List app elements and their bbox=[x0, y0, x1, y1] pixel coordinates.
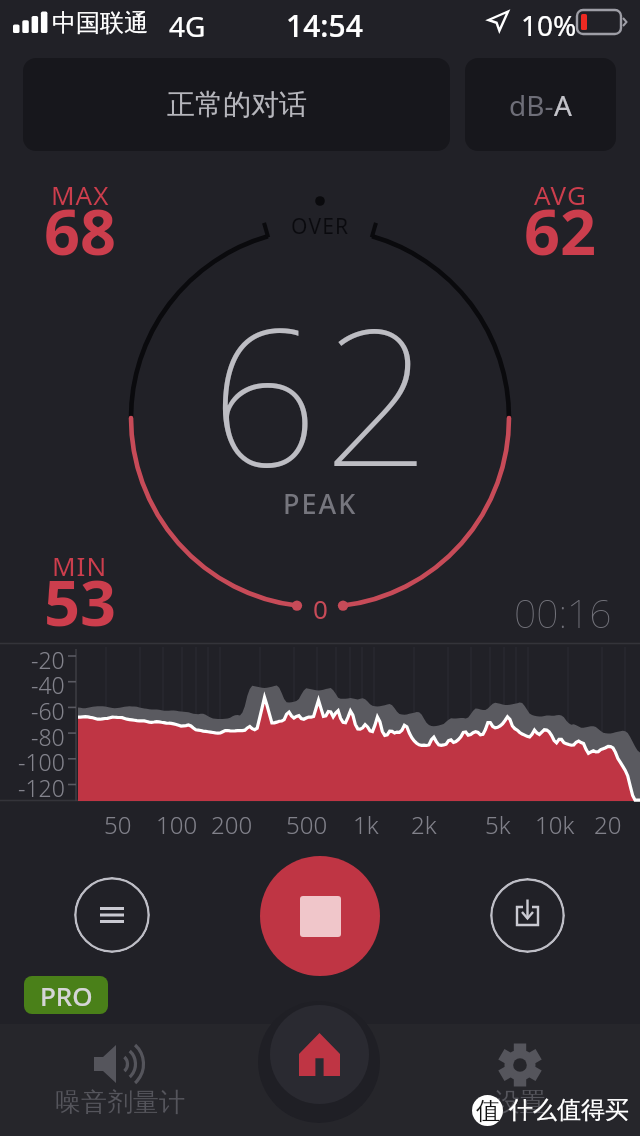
staticText: 1k bbox=[353, 808, 379, 841]
staticText: MIN bbox=[52, 548, 108, 583]
button[interactable]: Save bbox=[490, 878, 565, 953]
staticText: 14:54 bbox=[286, 5, 363, 46]
staticText: 10% bbox=[521, 6, 577, 44]
staticText: 00:16 bbox=[514, 586, 612, 639]
staticText: 200 bbox=[211, 808, 253, 841]
staticText: 62 bbox=[210, 263, 437, 522]
staticText: 68 bbox=[44, 188, 117, 274]
button[interactable]: Menu bbox=[74, 877, 150, 953]
staticText: 设置 bbox=[494, 1086, 546, 1119]
staticText: PEAK bbox=[283, 485, 358, 522]
button[interactable]: Home bbox=[258, 1001, 380, 1123]
staticText: 53 bbox=[44, 559, 117, 645]
staticText: 中国联通 bbox=[52, 8, 148, 38]
staticText: OVER bbox=[291, 212, 350, 241]
staticText: -20 bbox=[31, 644, 65, 670]
staticText: 10k bbox=[535, 808, 575, 841]
button[interactable]: dB- bbox=[465, 58, 616, 151]
staticText: 50 bbox=[104, 808, 132, 841]
staticText: 噪音剂量计 bbox=[55, 1086, 185, 1119]
staticText: PRO bbox=[40, 978, 93, 1013]
staticText: 正常的对话 bbox=[167, 87, 307, 122]
staticText: 500 bbox=[286, 808, 328, 841]
staticText: -40 bbox=[31, 669, 65, 695]
staticText: dB- bbox=[509, 86, 554, 124]
button[interactable]: Stop recording bbox=[260, 856, 380, 976]
staticText: 什么值得买 bbox=[509, 1095, 629, 1125]
staticText: -100 bbox=[18, 746, 65, 772]
staticText: 100 bbox=[156, 808, 198, 841]
button[interactable]: 设置 bbox=[400, 1024, 640, 1136]
staticText: 62 bbox=[524, 188, 597, 274]
staticText: A bbox=[554, 86, 572, 124]
staticText: MAX bbox=[51, 177, 110, 212]
staticText: -60 bbox=[31, 695, 65, 721]
button[interactable]: 正常的对话 bbox=[23, 58, 450, 151]
staticText: 2k bbox=[411, 808, 437, 841]
button[interactable]: PRO bbox=[24, 976, 108, 1014]
staticText: -80 bbox=[31, 721, 65, 747]
staticText: 20 bbox=[594, 808, 622, 841]
staticText: -120 bbox=[18, 772, 65, 798]
button[interactable]: 噪音剂量计 bbox=[0, 1024, 240, 1136]
staticText: 5k bbox=[485, 808, 511, 841]
staticText: 0 bbox=[313, 591, 328, 626]
staticText: 4G bbox=[169, 7, 206, 45]
staticText: AVG bbox=[534, 177, 587, 212]
staticText: 值 bbox=[476, 1096, 500, 1126]
